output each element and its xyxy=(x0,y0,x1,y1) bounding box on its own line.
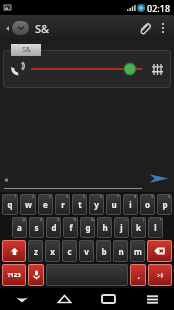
button[interactable]: Attach xyxy=(133,17,155,39)
button[interactable]: s xyxy=(29,217,44,238)
staticText: 6 xyxy=(100,194,103,199)
staticText: q xyxy=(7,199,13,210)
button[interactable]: q xyxy=(2,194,18,215)
staticText: 5 xyxy=(83,194,86,199)
staticText: S& xyxy=(35,21,50,36)
button[interactable]: :-) xyxy=(148,264,172,286)
button[interactable]: u xyxy=(106,194,121,215)
button[interactable]: i xyxy=(123,194,138,215)
staticText: y xyxy=(94,199,99,210)
button[interactable]: d xyxy=(46,217,61,238)
staticText: :-) xyxy=(157,271,163,279)
button[interactable]: Home xyxy=(43,288,86,310)
button[interactable]: Recent apps xyxy=(86,288,130,310)
button[interactable]: m xyxy=(130,240,145,262)
button[interactable]: More options xyxy=(155,20,171,36)
staticText: l xyxy=(154,222,157,233)
staticText: b xyxy=(101,246,107,257)
staticText: g xyxy=(85,222,91,233)
button[interactable]: Navigate up xyxy=(3,21,31,35)
staticText: o xyxy=(145,199,150,210)
button[interactable]: c xyxy=(62,240,77,262)
staticText: m xyxy=(134,246,142,257)
staticText: c xyxy=(67,246,72,257)
staticText: 2 xyxy=(32,194,35,199)
button[interactable]: v xyxy=(79,240,94,262)
button[interactable]: y xyxy=(89,194,104,215)
staticText: S& xyxy=(22,45,31,55)
button[interactable]: Space xyxy=(46,264,128,286)
button[interactable]: h xyxy=(97,217,112,238)
staticText: 02:18 xyxy=(147,2,171,14)
staticText: n xyxy=(118,246,124,257)
staticText: a xyxy=(17,222,22,233)
button[interactable]: e xyxy=(38,194,53,215)
staticText: 0 xyxy=(168,194,171,199)
staticText: ) xyxy=(160,217,162,222)
staticText: 7 xyxy=(117,194,120,199)
staticText: r xyxy=(61,199,65,210)
button[interactable]: l xyxy=(148,217,163,238)
button[interactable]: p xyxy=(157,194,172,215)
staticText: $ xyxy=(57,217,60,222)
staticText: e xyxy=(43,199,48,210)
button[interactable]: n xyxy=(113,240,128,262)
staticText: f xyxy=(69,222,73,233)
staticText: i xyxy=(129,199,132,210)
staticText: ?123 xyxy=(7,271,21,279)
staticText: v xyxy=(84,246,89,257)
staticText: - xyxy=(109,217,111,222)
staticText: p xyxy=(162,199,168,210)
button[interactable]: Shift xyxy=(2,240,26,262)
button[interactable]: . xyxy=(130,264,146,286)
staticText: z xyxy=(34,246,38,257)
staticText: s xyxy=(34,222,39,233)
button[interactable]: a xyxy=(12,217,27,238)
staticText: # xyxy=(40,217,43,222)
button[interactable]: x xyxy=(45,240,60,262)
staticText: % xyxy=(73,217,77,222)
button[interactable]: Menu xyxy=(130,288,174,310)
staticText: + xyxy=(125,217,128,222)
button[interactable]: Audio settings xyxy=(148,60,166,78)
button[interactable]: w xyxy=(20,194,36,215)
staticText: 9 xyxy=(151,194,154,199)
staticText: 4 xyxy=(66,194,69,199)
staticText: d xyxy=(51,222,57,233)
staticText: u xyxy=(111,199,117,210)
staticText: t xyxy=(78,199,82,210)
button[interactable] xyxy=(29,58,145,80)
staticText: x xyxy=(50,246,55,257)
button[interactable]: j xyxy=(114,217,129,238)
button[interactable]: f xyxy=(63,217,78,238)
button[interactable]: Backspace xyxy=(147,240,172,262)
staticText: k xyxy=(136,222,141,233)
button[interactable]: Back xyxy=(0,288,43,310)
button[interactable]: z xyxy=(28,240,43,262)
button[interactable]: b xyxy=(96,240,111,262)
staticText: . xyxy=(137,270,140,281)
staticText: j xyxy=(120,222,123,233)
staticText: 3 xyxy=(49,194,52,199)
button[interactable]: o xyxy=(140,194,155,215)
staticText: h xyxy=(102,222,108,233)
staticText: ( xyxy=(143,217,145,222)
staticText: & xyxy=(91,217,94,222)
button[interactable]: r xyxy=(55,194,70,215)
button[interactable]: k xyxy=(131,217,146,238)
button[interactable]: g xyxy=(80,217,95,238)
staticText: 8 xyxy=(134,194,137,199)
button[interactable]: Send xyxy=(146,167,172,189)
button[interactable]: Speaker xyxy=(8,60,26,78)
button[interactable]: Voice input xyxy=(28,264,44,286)
staticText: @ xyxy=(22,217,26,222)
staticText: 1 xyxy=(14,194,17,199)
button[interactable] xyxy=(4,173,142,189)
staticText: w xyxy=(25,199,32,210)
button[interactable]: t xyxy=(72,194,87,215)
button[interactable]: ?123 xyxy=(2,264,26,286)
button[interactable]: S& xyxy=(11,44,41,56)
